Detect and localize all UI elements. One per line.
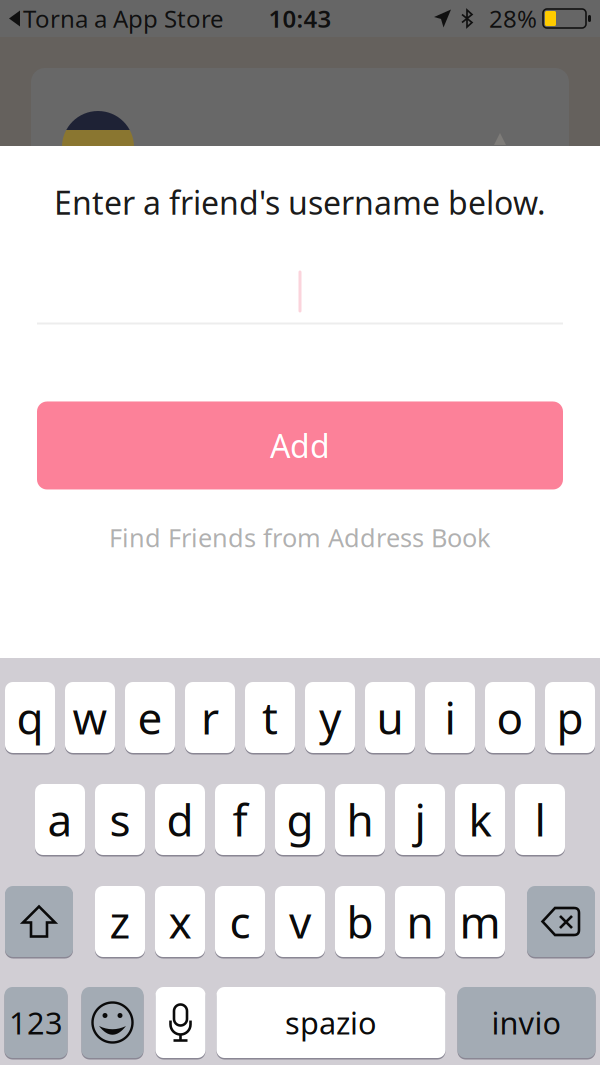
staticText: Enter a friend's username below. (54, 181, 546, 223)
button[interactable]: c (215, 886, 265, 957)
button[interactable]: spazio (216, 987, 445, 1058)
button[interactable]: t (245, 682, 295, 753)
staticText: s (109, 790, 130, 849)
staticText: o (496, 688, 523, 747)
button[interactable]: u (365, 682, 415, 753)
staticText: invio (491, 1002, 561, 1043)
staticText: f (232, 790, 247, 849)
button[interactable]: f (215, 784, 265, 855)
button[interactable]: l (515, 784, 565, 855)
button[interactable]: Dictation (155, 987, 205, 1058)
staticText: 123 (9, 1002, 63, 1043)
button[interactable]: y (305, 682, 355, 753)
staticText: b (346, 892, 373, 951)
staticText: j (414, 790, 425, 849)
staticText: t (262, 688, 278, 747)
staticText: Find Friends from Address Book (109, 521, 491, 554)
staticText: spazio (285, 1002, 377, 1043)
staticText: u (376, 688, 403, 747)
staticText: x (168, 892, 191, 951)
staticText: e (137, 688, 162, 747)
button[interactable]: o (485, 682, 535, 753)
staticText: r (201, 688, 219, 747)
staticText: c (229, 892, 250, 951)
staticText: z (109, 892, 130, 951)
button[interactable]: v (275, 886, 325, 957)
button[interactable]: invio (457, 987, 595, 1058)
button[interactable]: Add (37, 401, 563, 489)
staticText: k (468, 790, 491, 849)
staticText: l (534, 790, 545, 849)
button[interactable]: h (335, 784, 385, 855)
staticText: n (406, 892, 433, 951)
staticText: p (556, 688, 583, 747)
button[interactable]: w (65, 682, 115, 753)
staticText: Torna a App Store (23, 3, 224, 34)
button[interactable]: d (155, 784, 205, 855)
staticText: a (47, 790, 72, 849)
staticText: w (72, 688, 107, 747)
staticText: 28% (489, 3, 537, 34)
button[interactable]: n (395, 886, 445, 957)
button[interactable]: g (275, 784, 325, 855)
staticText: i (444, 688, 455, 747)
staticText: q (16, 688, 43, 747)
button[interactable]: Shift (5, 886, 73, 957)
staticText: 10:43 (268, 3, 331, 34)
button[interactable]: a (35, 784, 85, 855)
button[interactable]: s (95, 784, 145, 855)
staticText: m (459, 892, 500, 951)
button[interactable]: Emoji (81, 987, 143, 1058)
staticText: g (286, 790, 313, 849)
button[interactable]: j (395, 784, 445, 855)
button[interactable]: m (455, 886, 505, 957)
button[interactable]: k (455, 784, 505, 855)
staticText: y (319, 688, 341, 747)
button[interactable]: e (125, 682, 175, 753)
staticText: d (166, 790, 193, 849)
button[interactable]: x (155, 886, 205, 957)
button[interactable]: r (185, 682, 235, 753)
button[interactable]: 123 (4, 987, 67, 1058)
staticText: h (346, 790, 373, 849)
button[interactable]: p (545, 682, 595, 753)
button[interactable]: b (335, 886, 385, 957)
button[interactable]: Find Friends from Address Book (0, 522, 600, 552)
button[interactable]: q (5, 682, 55, 753)
button[interactable]: z (95, 886, 145, 957)
button[interactable]: i (425, 682, 475, 753)
button[interactable]: Delete (527, 886, 595, 957)
staticText: Add (270, 424, 330, 467)
staticText: v (289, 892, 311, 951)
